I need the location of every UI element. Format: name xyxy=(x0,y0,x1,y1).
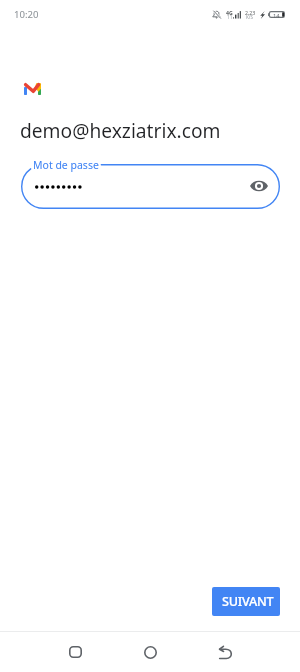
button[interactable]: Show password xyxy=(245,172,272,199)
staticText: Mot de passe xyxy=(33,158,99,172)
staticText: 2,23 xyxy=(245,9,256,16)
button[interactable]: Back xyxy=(209,636,241,668)
staticText: K/S xyxy=(246,14,254,20)
staticText: demo@hexziatrix.com xyxy=(20,117,221,143)
staticText: 10:20 xyxy=(14,8,39,21)
button[interactable]: SUIVANT xyxy=(212,587,280,616)
staticText: 14 xyxy=(273,12,280,20)
staticText: 11 xyxy=(227,14,233,20)
button[interactable]: Recent apps xyxy=(59,636,91,668)
staticText: SUIVANT xyxy=(222,593,274,610)
button[interactable]: Home xyxy=(134,636,166,668)
staticText: 4G xyxy=(226,9,233,16)
